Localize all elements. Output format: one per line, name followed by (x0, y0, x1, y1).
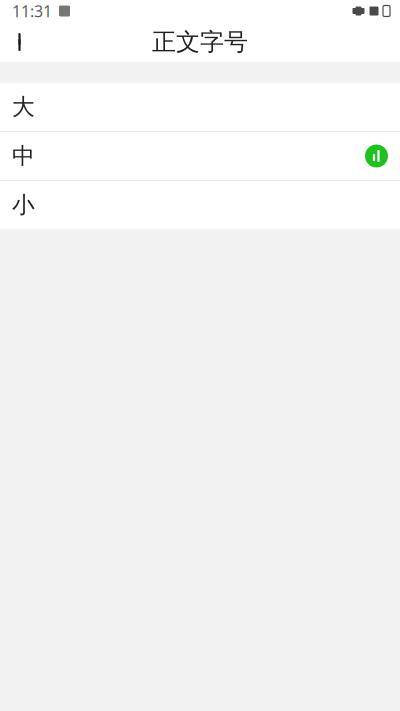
staticText: 正文字号 (152, 27, 248, 57)
staticText: 大 (12, 93, 35, 121)
staticText: 11:31 (12, 0, 52, 22)
button[interactable]: 返回 (0, 22, 44, 62)
button[interactable]: 小 (0, 181, 400, 229)
button[interactable]: 中 (0, 132, 400, 180)
button[interactable]: 大 (0, 83, 400, 131)
staticText: 小 (12, 191, 35, 219)
staticText: 中 (12, 142, 35, 170)
